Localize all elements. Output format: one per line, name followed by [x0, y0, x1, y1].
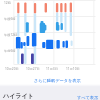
staticText: 午前6時: [4, 49, 16, 53]
staticText: 10月27日: [26, 67, 40, 71]
button[interactable]: さらに睡眠データを表示: [33, 77, 82, 84]
staticText: ハイライト: [3, 92, 34, 100]
staticText: 10月20日: [5, 67, 19, 71]
staticText: 11月3日: [46, 67, 58, 71]
staticText: 12時: [4, 1, 11, 5]
staticText: さらに睡眠データを表示: [34, 78, 81, 83]
staticText: 午後12時: [4, 33, 18, 37]
staticText: すべて表示: [77, 95, 99, 100]
staticText: 午後6時: [4, 17, 16, 21]
staticText: 11月10日: [66, 67, 80, 71]
button[interactable]: すべて表示: [76, 94, 100, 100]
